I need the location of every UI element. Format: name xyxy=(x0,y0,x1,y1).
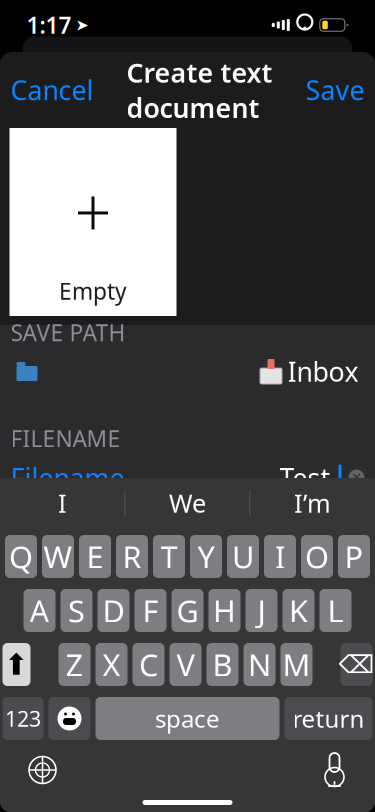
button[interactable]: Y xyxy=(190,535,222,578)
button[interactable]: V xyxy=(169,643,201,686)
staticText: M xyxy=(282,644,310,685)
staticText: SAVE PATH xyxy=(10,317,125,347)
button[interactable]: We xyxy=(125,478,249,528)
staticText: H xyxy=(213,590,236,631)
staticText: Z xyxy=(65,644,83,685)
staticText: Empty xyxy=(59,276,127,306)
button[interactable]: A xyxy=(23,589,55,632)
staticText: I’m xyxy=(294,486,331,520)
staticText: Y xyxy=(197,536,214,577)
staticText: return xyxy=(292,703,364,734)
button[interactable]: G xyxy=(171,589,203,632)
button[interactable]: Q xyxy=(5,535,37,578)
button[interactable]: Z xyxy=(58,643,90,686)
button[interactable]: R xyxy=(116,535,148,578)
staticText: G xyxy=(176,590,198,631)
staticText: ➤ xyxy=(75,16,88,34)
staticText: W xyxy=(43,536,72,577)
staticText: T xyxy=(160,536,177,577)
button[interactable]: Add document content xyxy=(9,128,176,316)
staticText: F xyxy=(142,590,158,631)
button[interactable]: Emoji keyboard xyxy=(48,697,90,740)
button[interactable]: M xyxy=(280,643,312,686)
staticText: I xyxy=(275,536,285,577)
button[interactable]: B xyxy=(206,643,238,686)
staticText: L xyxy=(327,590,343,631)
staticText: ⌫ xyxy=(338,650,374,679)
button[interactable]: Cancel xyxy=(0,62,104,118)
staticText: O xyxy=(305,536,329,577)
staticText: X xyxy=(102,644,120,685)
staticText: V xyxy=(176,644,194,685)
button[interactable]: T xyxy=(153,535,185,578)
button[interactable]: I’m xyxy=(250,478,374,528)
button[interactable]: D xyxy=(97,589,129,632)
staticText: FILENAME xyxy=(10,423,120,454)
staticText: ✕ xyxy=(351,470,362,485)
button[interactable]: return xyxy=(284,697,372,740)
staticText: P xyxy=(344,536,363,577)
staticText: space xyxy=(155,703,220,734)
button[interactable]: Dictation xyxy=(313,743,355,797)
button[interactable]: Save xyxy=(294,62,375,118)
staticText: 1:17 xyxy=(26,10,71,40)
staticText: Inbox xyxy=(287,354,358,389)
button[interactable]: space xyxy=(95,697,279,740)
staticText: Save xyxy=(305,72,364,108)
button[interactable]: E xyxy=(79,535,111,578)
staticText: E xyxy=(86,536,103,577)
staticText: A xyxy=(29,590,49,631)
button[interactable]: N xyxy=(243,643,275,686)
button[interactable]: Delete xyxy=(340,643,372,686)
button[interactable]: K xyxy=(282,589,314,632)
staticText: Test. xyxy=(279,460,337,495)
staticText: B xyxy=(212,644,232,685)
staticText: We xyxy=(169,486,206,520)
staticText: D xyxy=(102,590,124,631)
button[interactable]: U xyxy=(227,535,259,578)
staticText: C xyxy=(139,644,158,685)
button[interactable]: Filename xyxy=(0,454,375,502)
staticText: ⬆ xyxy=(4,648,29,681)
staticText: S xyxy=(68,590,85,631)
button[interactable]: O xyxy=(301,535,333,578)
staticText: K xyxy=(289,590,308,631)
button[interactable]: P xyxy=(338,535,370,578)
button[interactable]: Shift xyxy=(2,643,30,686)
button[interactable]: Inbox xyxy=(0,347,375,395)
button[interactable]: W xyxy=(42,535,74,578)
button[interactable]: S xyxy=(60,589,92,632)
button[interactable]: F xyxy=(134,589,166,632)
staticText: Create text document xyxy=(126,55,272,125)
staticText: Cancel xyxy=(10,72,93,108)
button[interactable]: L xyxy=(319,589,351,632)
staticText: R xyxy=(122,536,141,577)
button[interactable]: C xyxy=(132,643,164,686)
staticText: Filename xyxy=(10,460,124,495)
staticText: I xyxy=(58,486,67,520)
button[interactable]: Switch keyboard xyxy=(19,747,65,793)
staticText: 123 xyxy=(5,704,41,733)
staticText: U xyxy=(232,536,254,577)
staticText: N xyxy=(248,644,271,685)
staticText: Q xyxy=(9,536,33,577)
staticText: J xyxy=(257,590,265,631)
button[interactable]: I xyxy=(264,535,296,578)
button[interactable]: I xyxy=(0,478,124,528)
button[interactable]: X xyxy=(95,643,127,686)
button[interactable]: J xyxy=(245,589,277,632)
button[interactable]: 123 xyxy=(2,697,43,740)
button[interactable]: H xyxy=(208,589,240,632)
